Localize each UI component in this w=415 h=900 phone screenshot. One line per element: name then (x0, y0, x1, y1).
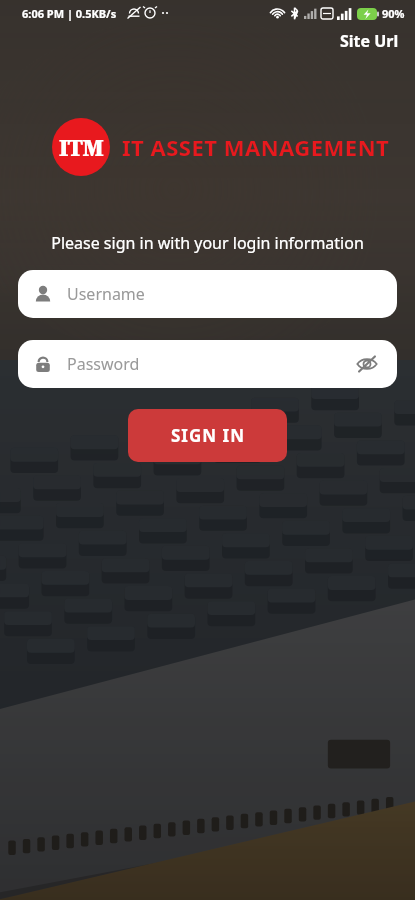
staticText: 90% (382, 6, 405, 21)
staticText: Please sign in with your login informati… (0, 232, 415, 254)
staticText: Username (67, 283, 382, 305)
staticText: ITM (59, 132, 104, 162)
button[interactable]: Show password (352, 349, 382, 379)
staticText: Site Url (340, 30, 399, 52)
staticText: 6:06 PM | 0.5KB/s (22, 6, 117, 21)
button[interactable]: SIGN IN (128, 409, 287, 462)
button[interactable]: Site Url (324, 26, 415, 56)
staticText: SIGN IN (171, 424, 245, 447)
button[interactable]: Password (18, 340, 397, 388)
button[interactable]: Username (18, 270, 397, 318)
staticText: Password (67, 353, 352, 375)
staticText: IT ASSET MANAGEMENT (122, 132, 390, 162)
